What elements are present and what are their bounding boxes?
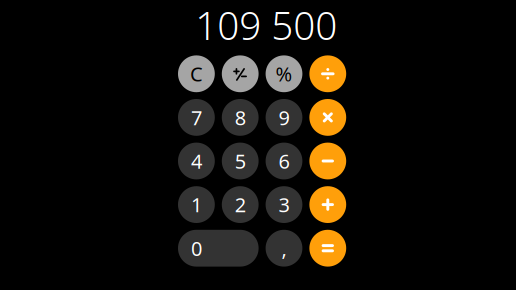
staticText: 4 xyxy=(191,148,202,174)
staticText: C xyxy=(190,60,203,87)
staticText: 9 xyxy=(278,104,289,131)
staticText: 2 xyxy=(235,191,246,218)
staticText: 3 xyxy=(278,191,289,218)
button[interactable]: % xyxy=(266,55,302,92)
button[interactable]: Divide xyxy=(309,55,346,92)
button[interactable]: Minus xyxy=(309,143,346,179)
button[interactable]: 6 xyxy=(266,143,302,179)
staticText: % xyxy=(275,60,292,87)
button[interactable]: 9 xyxy=(266,99,302,136)
button[interactable]: Plus xyxy=(309,186,346,223)
button[interactable]: 5 xyxy=(222,143,259,179)
staticText: 1 xyxy=(191,191,202,218)
button[interactable]: Equals xyxy=(309,230,346,267)
button[interactable]: C xyxy=(178,55,215,92)
button[interactable]: 2 xyxy=(222,186,259,223)
staticText: 6 xyxy=(278,148,289,174)
button[interactable]: 0 xyxy=(178,230,259,267)
staticText: 0 xyxy=(191,235,202,261)
button[interactable]: Toggle sign xyxy=(222,55,259,92)
button[interactable]: 1 xyxy=(178,186,215,223)
staticText: 8 xyxy=(235,104,246,131)
button[interactable]: 3 xyxy=(266,186,302,223)
staticText: 109 500 xyxy=(195,0,337,50)
staticText: , xyxy=(281,235,286,261)
staticText: 5 xyxy=(235,148,246,174)
button[interactable]: 4 xyxy=(178,143,215,179)
button[interactable]: , xyxy=(266,230,302,267)
button[interactable]: 7 xyxy=(178,99,215,136)
staticText: 7 xyxy=(191,104,202,131)
button[interactable]: 8 xyxy=(222,99,259,136)
button[interactable]: Multiply xyxy=(309,99,346,136)
